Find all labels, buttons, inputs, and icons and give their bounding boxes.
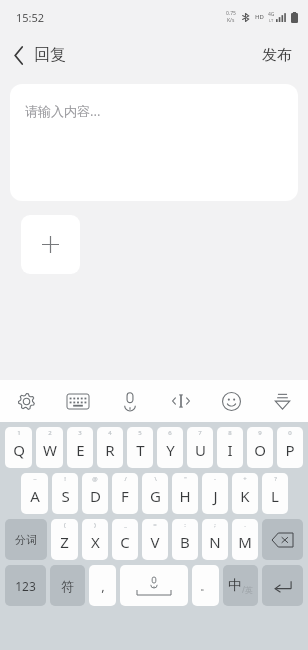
button[interactable]: Keyboard layout [52, 380, 104, 422]
staticText: A [30, 486, 40, 506]
staticText: 123 [15, 578, 36, 594]
staticText: C [120, 532, 130, 552]
button[interactable]: / [112, 473, 138, 514]
staticText: B [180, 532, 190, 552]
staticText: K [240, 486, 250, 506]
button[interactable]: ; [202, 519, 228, 560]
button[interactable]: ! [52, 473, 78, 514]
staticText: R [105, 440, 115, 460]
staticText: Z [60, 532, 69, 552]
staticText: ~ [33, 475, 37, 483]
staticText: /英 [242, 584, 253, 595]
button[interactable]: 5 [127, 427, 153, 468]
button[interactable]: + [232, 473, 258, 514]
staticText: 符 [61, 578, 74, 594]
staticText: Y [166, 440, 175, 460]
staticText: 4G [268, 11, 275, 18]
staticText: 。 [200, 579, 211, 593]
button[interactable]: 8 [217, 427, 243, 468]
button[interactable]: 6 [157, 427, 183, 468]
button[interactable]: 4 [97, 427, 123, 468]
staticText: : [184, 521, 186, 529]
staticText: 0.75 [226, 10, 236, 17]
button[interactable]: - [202, 473, 228, 514]
staticText: \ [154, 475, 157, 483]
button[interactable]: , [89, 565, 116, 606]
button[interactable]: Emoji [206, 380, 257, 422]
staticText: 中 [228, 577, 242, 595]
staticText: . [244, 521, 246, 529]
staticText: - [214, 475, 216, 483]
button[interactable]: 0 [277, 427, 303, 468]
staticText: H [179, 486, 191, 506]
button[interactable]: Add image [21, 215, 80, 274]
staticText: K/s [227, 17, 235, 24]
staticText: ( [64, 521, 66, 529]
staticText: D [90, 486, 101, 506]
staticText: ? [274, 475, 277, 483]
staticText: _ [124, 521, 127, 529]
staticText: L [271, 486, 279, 506]
staticText: M [238, 532, 252, 552]
staticText: J [213, 486, 218, 506]
button[interactable]: ) [82, 519, 108, 560]
staticText: E [76, 440, 85, 460]
button[interactable]: 9 [247, 427, 273, 468]
other: Back [14, 47, 24, 64]
button[interactable]: 分词 [5, 519, 47, 560]
button[interactable]: Switch Chinese English [223, 565, 258, 606]
button[interactable]: Backspace [262, 519, 303, 560]
staticText: ; [214, 521, 216, 529]
button[interactable]: Move cursor [155, 380, 206, 422]
staticText: LT [269, 18, 274, 23]
staticText: V [150, 532, 160, 552]
staticText: N [209, 532, 221, 552]
button[interactable]: 1 [5, 427, 32, 468]
staticText: 1 [17, 429, 21, 437]
staticText: ) [94, 521, 96, 529]
staticText: F [121, 486, 129, 506]
staticText: 0 [288, 429, 292, 437]
button[interactable]: Hide keyboard [257, 380, 308, 422]
button[interactable]: 发布 [246, 38, 308, 73]
staticText: 9 [258, 429, 262, 437]
staticText: 请输入内容... [25, 102, 101, 120]
button[interactable]: = [142, 519, 168, 560]
staticText: @ [92, 475, 98, 483]
staticText: 分词 [15, 533, 37, 547]
button[interactable]: Space [120, 565, 188, 606]
button[interactable]: \ [142, 473, 168, 514]
button[interactable]: ( [51, 519, 78, 560]
button[interactable]: 符 [50, 565, 85, 606]
button[interactable]: 3 [67, 427, 93, 468]
button[interactable]: Back [0, 39, 76, 71]
button[interactable]: 7 [187, 427, 213, 468]
staticText: 8 [228, 429, 232, 437]
staticText: O [254, 440, 266, 460]
button[interactable]: . [232, 519, 258, 560]
button[interactable]: Enter [262, 565, 303, 606]
button[interactable]: 123 [5, 565, 46, 606]
staticText: Q [13, 440, 25, 460]
staticText: HD [255, 13, 264, 21]
button[interactable]: ? [262, 473, 288, 514]
button[interactable]: 2 [36, 427, 63, 468]
staticText: 2 [48, 429, 52, 437]
button[interactable]: : [172, 519, 198, 560]
staticText: 7 [198, 429, 202, 437]
button[interactable]: 请输入内容... [10, 84, 298, 201]
button[interactable]: @ [82, 473, 108, 514]
button[interactable]: 。 [192, 565, 219, 606]
button[interactable]: Settings [0, 380, 52, 422]
staticText: / [124, 475, 127, 483]
button[interactable]: ~ [21, 473, 48, 514]
staticText: 5 [138, 429, 142, 437]
staticText: + [243, 475, 247, 483]
staticText: 15:52 [16, 10, 45, 25]
button[interactable]: _ [112, 519, 138, 560]
button[interactable]: Voice input [104, 380, 155, 422]
staticText: I [227, 440, 233, 460]
staticText: G [150, 486, 161, 506]
button[interactable]: " [172, 473, 198, 514]
staticText: , [101, 577, 105, 595]
